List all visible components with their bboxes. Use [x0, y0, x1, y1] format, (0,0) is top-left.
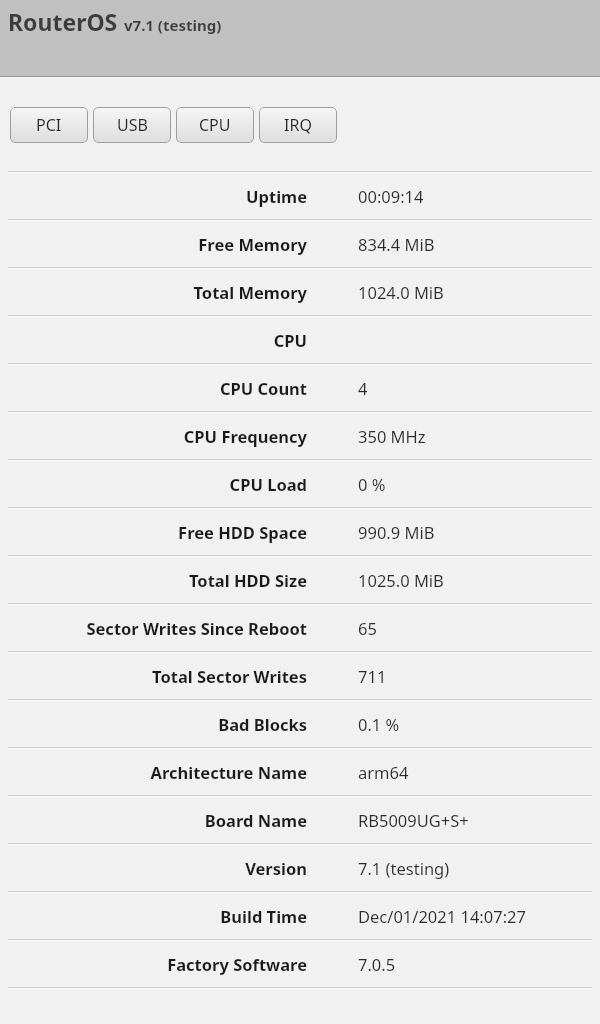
button[interactable]: USB: [93, 107, 171, 143]
staticText: 350 MHz: [358, 425, 426, 447]
button[interactable]: CPU Load: [0, 461, 600, 507]
staticText: 7.1 (testing): [358, 857, 450, 879]
staticText: RB5009UG+S+: [358, 809, 469, 831]
button[interactable]: Version: [0, 845, 600, 891]
staticText: CPU Frequency: [0, 425, 307, 447]
button[interactable]: CPU Frequency: [0, 413, 600, 459]
staticText: CPU Count: [0, 377, 307, 399]
button[interactable]: CPU: [176, 107, 254, 143]
staticText: Dec/01/2021 14:07:27: [358, 905, 526, 927]
staticText: 7.0.5: [358, 953, 396, 975]
staticText: CPU: [199, 114, 231, 136]
button[interactable]: Total Memory: [0, 269, 600, 315]
button[interactable]: Bad Blocks: [0, 701, 600, 747]
staticText: 00:09:14: [358, 185, 424, 207]
staticText: CPU Load: [0, 473, 307, 495]
staticText: Version: [0, 857, 307, 879]
staticText: 4: [358, 377, 368, 399]
button[interactable]: Factory Software: [0, 941, 600, 987]
button[interactable]: Total Sector Writes: [0, 653, 600, 699]
staticText: IRQ: [284, 114, 312, 136]
staticText: Build Time: [0, 905, 307, 927]
staticText: Factory Software: [0, 953, 307, 975]
button[interactable]: Free HDD Space: [0, 509, 600, 555]
staticText: Architecture Name: [0, 761, 307, 783]
staticText: Total Sector Writes: [0, 665, 307, 687]
staticText: Bad Blocks: [0, 713, 307, 735]
staticText: Total Memory: [0, 281, 307, 303]
button[interactable]: Architecture Name: [0, 749, 600, 795]
button[interactable]: IRQ: [259, 107, 337, 143]
staticText: 834.4 MiB: [358, 233, 435, 255]
staticText: PCI: [36, 114, 62, 136]
staticText: Sector Writes Since Reboot: [0, 617, 307, 639]
staticText: Uptime: [0, 185, 307, 207]
staticText: 0 %: [358, 473, 386, 495]
staticText: CPU: [0, 329, 307, 351]
button[interactable]: Board Name: [0, 797, 600, 843]
button[interactable]: Build Time: [0, 893, 600, 939]
button[interactable]: Sector Writes Since Reboot: [0, 605, 600, 651]
staticText: arm64: [358, 761, 409, 783]
staticText: USB: [117, 114, 148, 136]
staticText: 990.9 MiB: [358, 521, 435, 543]
button[interactable]: CPU Count: [0, 365, 600, 411]
button[interactable]: Total HDD Size: [0, 557, 600, 603]
staticText: 711: [358, 665, 387, 687]
staticText: v7.1 (testing): [124, 15, 222, 35]
button[interactable]: PCI: [10, 107, 88, 143]
staticText: Total HDD Size: [0, 569, 307, 591]
staticText: Board Name: [0, 809, 307, 831]
button[interactable]: CPU: [0, 317, 600, 363]
staticText: Free Memory: [0, 233, 307, 255]
staticText: 1025.0 MiB: [358, 569, 444, 591]
button[interactable]: Uptime: [0, 173, 600, 219]
staticText: Free HDD Space: [0, 521, 307, 543]
staticText: RouterOS: [8, 6, 118, 37]
staticText: 0.1 %: [358, 713, 400, 735]
button[interactable]: Free Memory: [0, 221, 600, 267]
staticText: 65: [358, 617, 377, 639]
staticText: 1024.0 MiB: [358, 281, 444, 303]
